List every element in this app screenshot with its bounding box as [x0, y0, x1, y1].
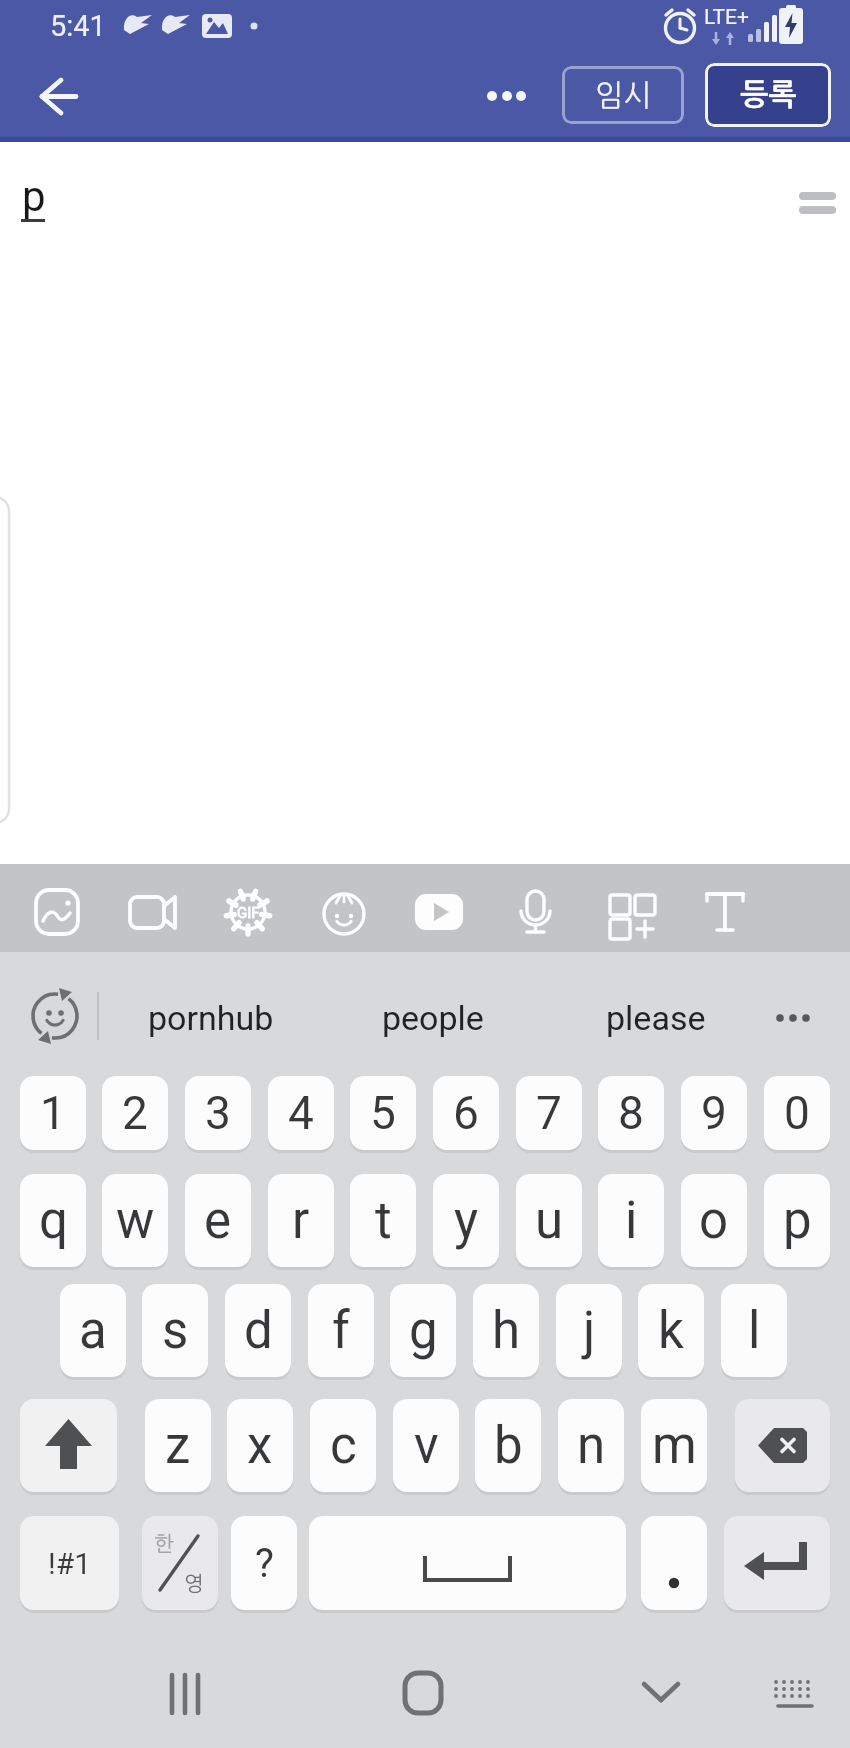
button[interactable]: ? [231, 1516, 297, 1610]
button[interactable]: 5 [350, 1076, 416, 1150]
button[interactable]: z [145, 1399, 211, 1492]
staticText: f [332, 1301, 350, 1361]
button[interactable]: o [681, 1174, 747, 1267]
staticText: LTE+ [704, 5, 749, 30]
button[interactable]: n [558, 1399, 624, 1492]
button[interactable]: q [20, 1174, 86, 1267]
button[interactable] [309, 1516, 626, 1610]
staticText: t [375, 1191, 392, 1251]
staticText: d [244, 1301, 273, 1361]
button[interactable] [724, 1516, 830, 1610]
button[interactable]: 7 [516, 1076, 582, 1150]
button[interactable]: 9 [681, 1076, 747, 1150]
button[interactable]: 3 [185, 1076, 251, 1150]
staticText: pornhub [148, 998, 274, 1038]
button[interactable]: w [102, 1174, 168, 1267]
staticText: 8 [618, 1086, 644, 1140]
button[interactable]: 1 [20, 1076, 86, 1150]
button[interactable]: p [764, 1174, 830, 1267]
staticText: people [382, 998, 484, 1038]
button[interactable] [297, 864, 391, 952]
button[interactable] [679, 864, 773, 952]
staticText: 한 [154, 1533, 174, 1554]
staticText: u [535, 1191, 564, 1251]
staticText: 4 [288, 1086, 314, 1140]
staticText: y [454, 1191, 479, 1251]
staticText: b [494, 1416, 523, 1476]
button[interactable]: 임시 [562, 66, 684, 124]
staticText: a [79, 1301, 107, 1361]
staticText: 등록 [740, 80, 797, 110]
button[interactable] [106, 864, 200, 952]
button[interactable]: 등록 [705, 63, 831, 127]
button[interactable]: s [142, 1284, 208, 1377]
staticText: m [652, 1416, 697, 1476]
button[interactable] [142, 1516, 218, 1610]
button[interactable] [396, 1664, 450, 1726]
button[interactable] [765, 998, 821, 1038]
button[interactable]: k [638, 1284, 704, 1377]
button[interactable] [28, 68, 88, 124]
button[interactable] [392, 864, 486, 952]
staticText: k [658, 1301, 684, 1361]
staticText: 9 [701, 1086, 727, 1140]
button[interactable]: b [475, 1399, 541, 1492]
staticText: 0 [784, 1086, 810, 1140]
button[interactable] [478, 81, 536, 111]
staticText: please [606, 998, 706, 1038]
staticText: s [162, 1301, 189, 1361]
button[interactable]: h [473, 1284, 539, 1377]
staticText: 영 [184, 1573, 204, 1594]
staticText: e [204, 1191, 232, 1251]
button[interactable]: v [393, 1399, 459, 1492]
button[interactable]: j [556, 1284, 622, 1377]
button[interactable]: i [598, 1174, 664, 1267]
button[interactable]: y [433, 1174, 499, 1267]
button[interactable]: g [390, 1284, 456, 1377]
staticText: 5:41 [50, 9, 106, 43]
button[interactable]: please [576, 993, 736, 1043]
button[interactable] [158, 1664, 212, 1726]
button[interactable]: l [721, 1284, 787, 1377]
button[interactable] [20, 1399, 117, 1492]
staticText: i [625, 1191, 638, 1251]
button[interactable]: people [353, 993, 513, 1043]
button[interactable] [641, 1516, 707, 1610]
button[interactable]: t [350, 1174, 416, 1267]
staticText: v [414, 1416, 439, 1476]
staticText: q [39, 1191, 68, 1251]
button[interactable]: 2 [102, 1076, 168, 1150]
button[interactable] [10, 864, 104, 952]
button[interactable]: c [310, 1399, 376, 1492]
button[interactable] [584, 864, 678, 952]
button[interactable] [634, 1664, 688, 1726]
staticText: 3 [205, 1086, 231, 1140]
button[interactable]: m [641, 1399, 707, 1492]
button[interactable] [488, 864, 582, 952]
staticText: o [699, 1191, 729, 1251]
staticText: n [577, 1416, 606, 1476]
button[interactable] [201, 864, 295, 952]
staticText: j [583, 1301, 596, 1361]
staticText: r [292, 1191, 310, 1251]
button[interactable]: a [60, 1284, 126, 1377]
button[interactable]: 0 [764, 1076, 830, 1150]
button[interactable] [770, 1664, 820, 1726]
button[interactable]: e [185, 1174, 251, 1267]
staticText: p [783, 1191, 812, 1251]
button[interactable] [735, 1399, 830, 1492]
button[interactable]: 4 [268, 1076, 334, 1150]
staticText: g [409, 1301, 438, 1361]
button[interactable]: 8 [598, 1076, 664, 1150]
button[interactable]: r [268, 1174, 334, 1267]
button[interactable] [26, 987, 84, 1045]
button[interactable]: f [308, 1284, 374, 1377]
button[interactable]: 6 [433, 1076, 499, 1150]
staticText: 1 [40, 1086, 66, 1140]
button[interactable]: u [516, 1174, 582, 1267]
button[interactable]: pornhub [131, 993, 291, 1043]
button[interactable]: x [227, 1399, 293, 1492]
button[interactable]: !#1 [20, 1516, 119, 1610]
staticText: 5 [370, 1086, 396, 1140]
button[interactable]: d [225, 1284, 291, 1377]
